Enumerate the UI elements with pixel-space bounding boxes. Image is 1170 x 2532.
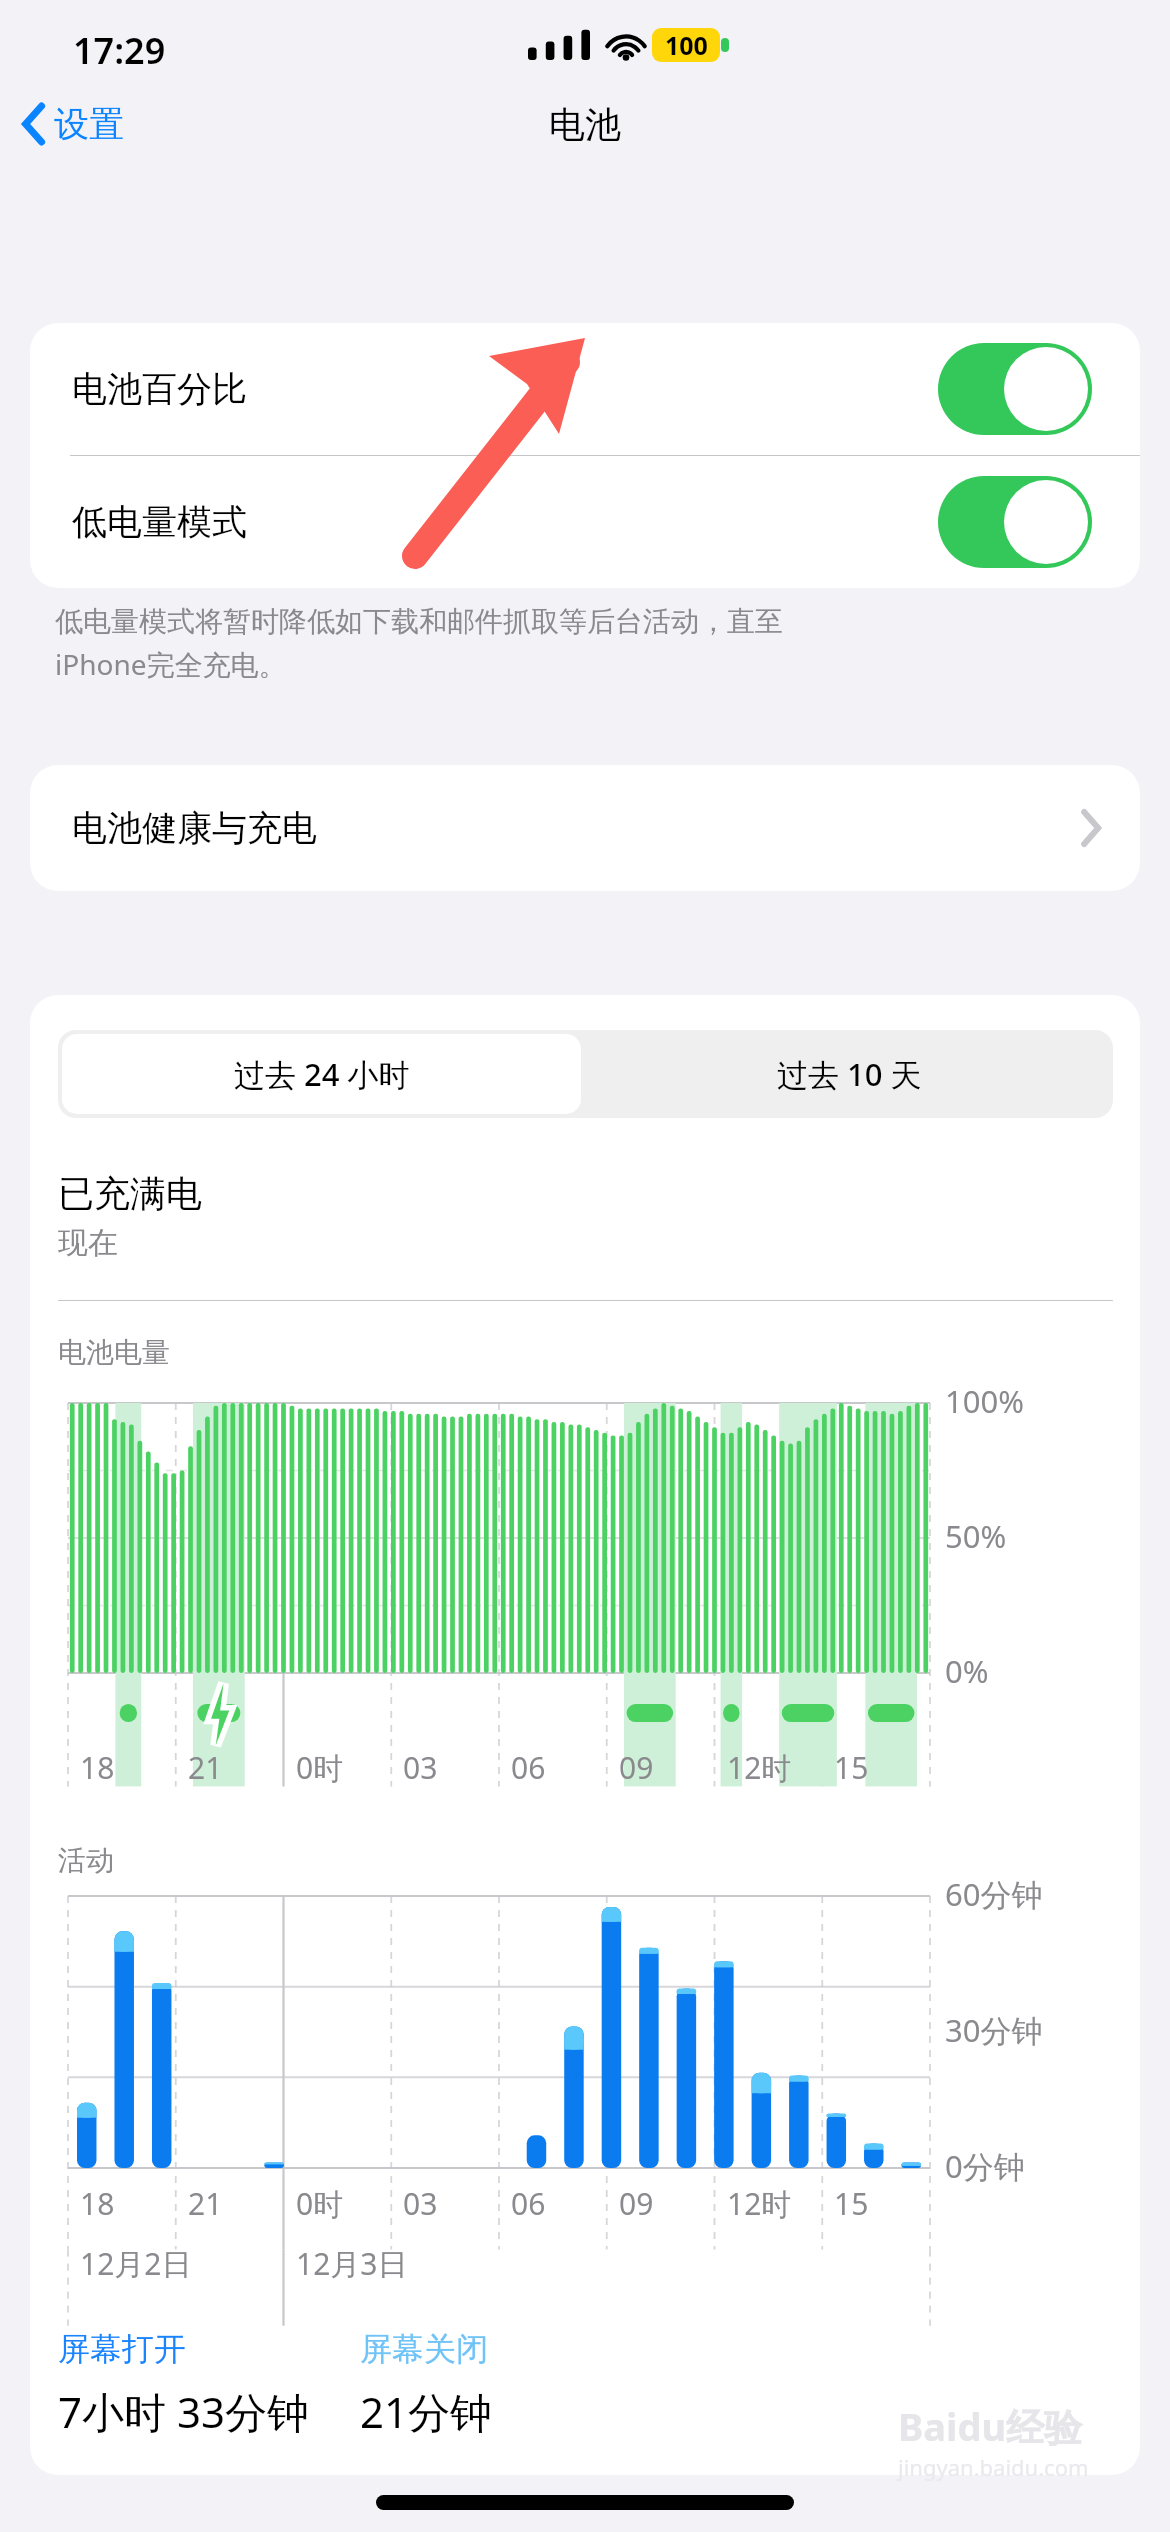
staticText: 电池 — [549, 102, 621, 147]
staticText: 现在 — [58, 1224, 118, 1262]
staticText: 屏幕关闭 — [360, 2329, 488, 2369]
staticText: 屏幕打开 — [58, 2329, 186, 2369]
staticText: 03 — [403, 2183, 438, 2224]
button[interactable]: 低电量模式 — [30, 456, 1140, 588]
staticText: Baidu经验 — [898, 2400, 1083, 2452]
staticText: 电池健康与充电 — [72, 806, 317, 850]
staticText: 低电量模式 — [72, 500, 247, 544]
staticText: 12时 — [727, 2183, 792, 2224]
staticText: 电池百分比 — [72, 367, 247, 411]
staticText: 12月3日 — [296, 2243, 408, 2284]
staticText: 0% — [945, 1650, 989, 1692]
staticText: 15 — [834, 2183, 869, 2224]
staticText: 0时 — [296, 2183, 344, 2224]
staticText: 18 — [80, 2183, 115, 2224]
staticText: 21 — [188, 1747, 223, 1788]
staticText: 7小时 33分钟 — [58, 2383, 309, 2440]
staticText: 17:29 — [73, 26, 166, 75]
staticText: 21 — [188, 2183, 223, 2224]
staticText: 已充满电 — [58, 1171, 202, 1216]
staticText: 50% — [945, 1515, 1007, 1557]
staticText: 12时 — [727, 1747, 792, 1788]
staticText: 活动 — [58, 1843, 114, 1878]
staticText: 06 — [511, 2183, 546, 2224]
staticText: 03 — [403, 1747, 438, 1788]
button[interactable]: Toggle on — [938, 476, 1092, 568]
staticText: 15 — [834, 1747, 869, 1788]
button[interactable]: 电池健康与充电 — [30, 765, 1140, 891]
staticText: 电池电量 — [58, 1335, 170, 1370]
staticText: 12月2日 — [80, 2243, 192, 2284]
staticText: iPhone完全充电。 — [55, 645, 287, 683]
staticText: 30分钟 — [945, 2009, 1043, 2051]
staticText: jingyan.baidu.com — [898, 2452, 1089, 2482]
staticText: 09 — [619, 2183, 654, 2224]
button[interactable]: 过去 10 天 — [585, 1030, 1113, 1118]
staticText: 21分钟 — [360, 2383, 493, 2440]
staticText: 09 — [619, 1747, 654, 1788]
staticText: 100% — [945, 1380, 1024, 1422]
staticText: 过去 24 小时 — [234, 1053, 410, 1095]
staticText: 06 — [511, 1747, 546, 1788]
staticText: 0分钟 — [945, 2145, 1025, 2187]
staticText: 18 — [80, 1747, 115, 1788]
button[interactable]: Toggle on — [938, 343, 1092, 435]
staticText: 过去 10 天 — [777, 1053, 922, 1095]
staticText: 低电量模式将暂时降低如下载和邮件抓取等后台活动，直至 — [55, 604, 783, 639]
staticText: 设置 — [54, 102, 124, 146]
button[interactable]: 过去 24 小时 — [58, 1030, 585, 1118]
button[interactable]: 设置 — [18, 96, 130, 152]
staticText: 60分钟 — [945, 1873, 1043, 1915]
button[interactable]: 电池百分比 — [30, 323, 1140, 455]
staticText: 100 — [665, 28, 708, 62]
staticText: 0时 — [296, 1747, 344, 1788]
